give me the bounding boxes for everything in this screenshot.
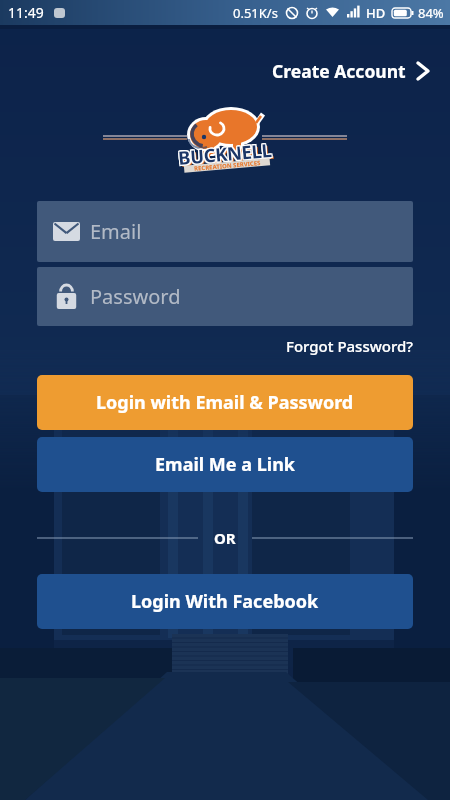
staticText: Email — [90, 218, 142, 245]
staticText: 84% — [418, 4, 444, 22]
staticText: BUCKNELL — [177, 136, 273, 169]
staticText: OR — [214, 528, 236, 548]
button[interactable]: Password — [37, 267, 413, 326]
staticText: 11:49 — [8, 3, 44, 22]
staticText: BUCKNELL — [178, 138, 274, 171]
button[interactable]: Forgot Password? — [286, 336, 414, 356]
staticText: RECREATION SERVICES — [194, 159, 261, 172]
staticText: BUCKNELL — [177, 137, 273, 170]
button[interactable]: Email Me a Link — [37, 437, 413, 492]
staticText: BUCKNELL — [178, 136, 274, 169]
button[interactable]: Login With Facebook — [37, 574, 413, 629]
staticText: Email Me a Link — [155, 452, 296, 477]
staticText: Password — [90, 283, 181, 310]
staticText: HD — [366, 4, 386, 22]
staticText: Create Account — [272, 59, 406, 83]
button[interactable]: Create Account — [268, 55, 434, 87]
staticText: BUCKNELL — [176, 138, 272, 171]
staticText: 0.51K/s — [233, 4, 278, 22]
button[interactable]: Email — [37, 201, 413, 262]
staticText: BUCKNELL — [179, 139, 275, 172]
staticText: BUCKNELL — [177, 138, 273, 171]
staticText: Login with Email & Password — [96, 390, 354, 415]
staticText: BUCKNELL — [176, 136, 272, 169]
button[interactable]: Login with Email & Password — [37, 375, 413, 430]
staticText: Login With Facebook — [131, 589, 319, 614]
